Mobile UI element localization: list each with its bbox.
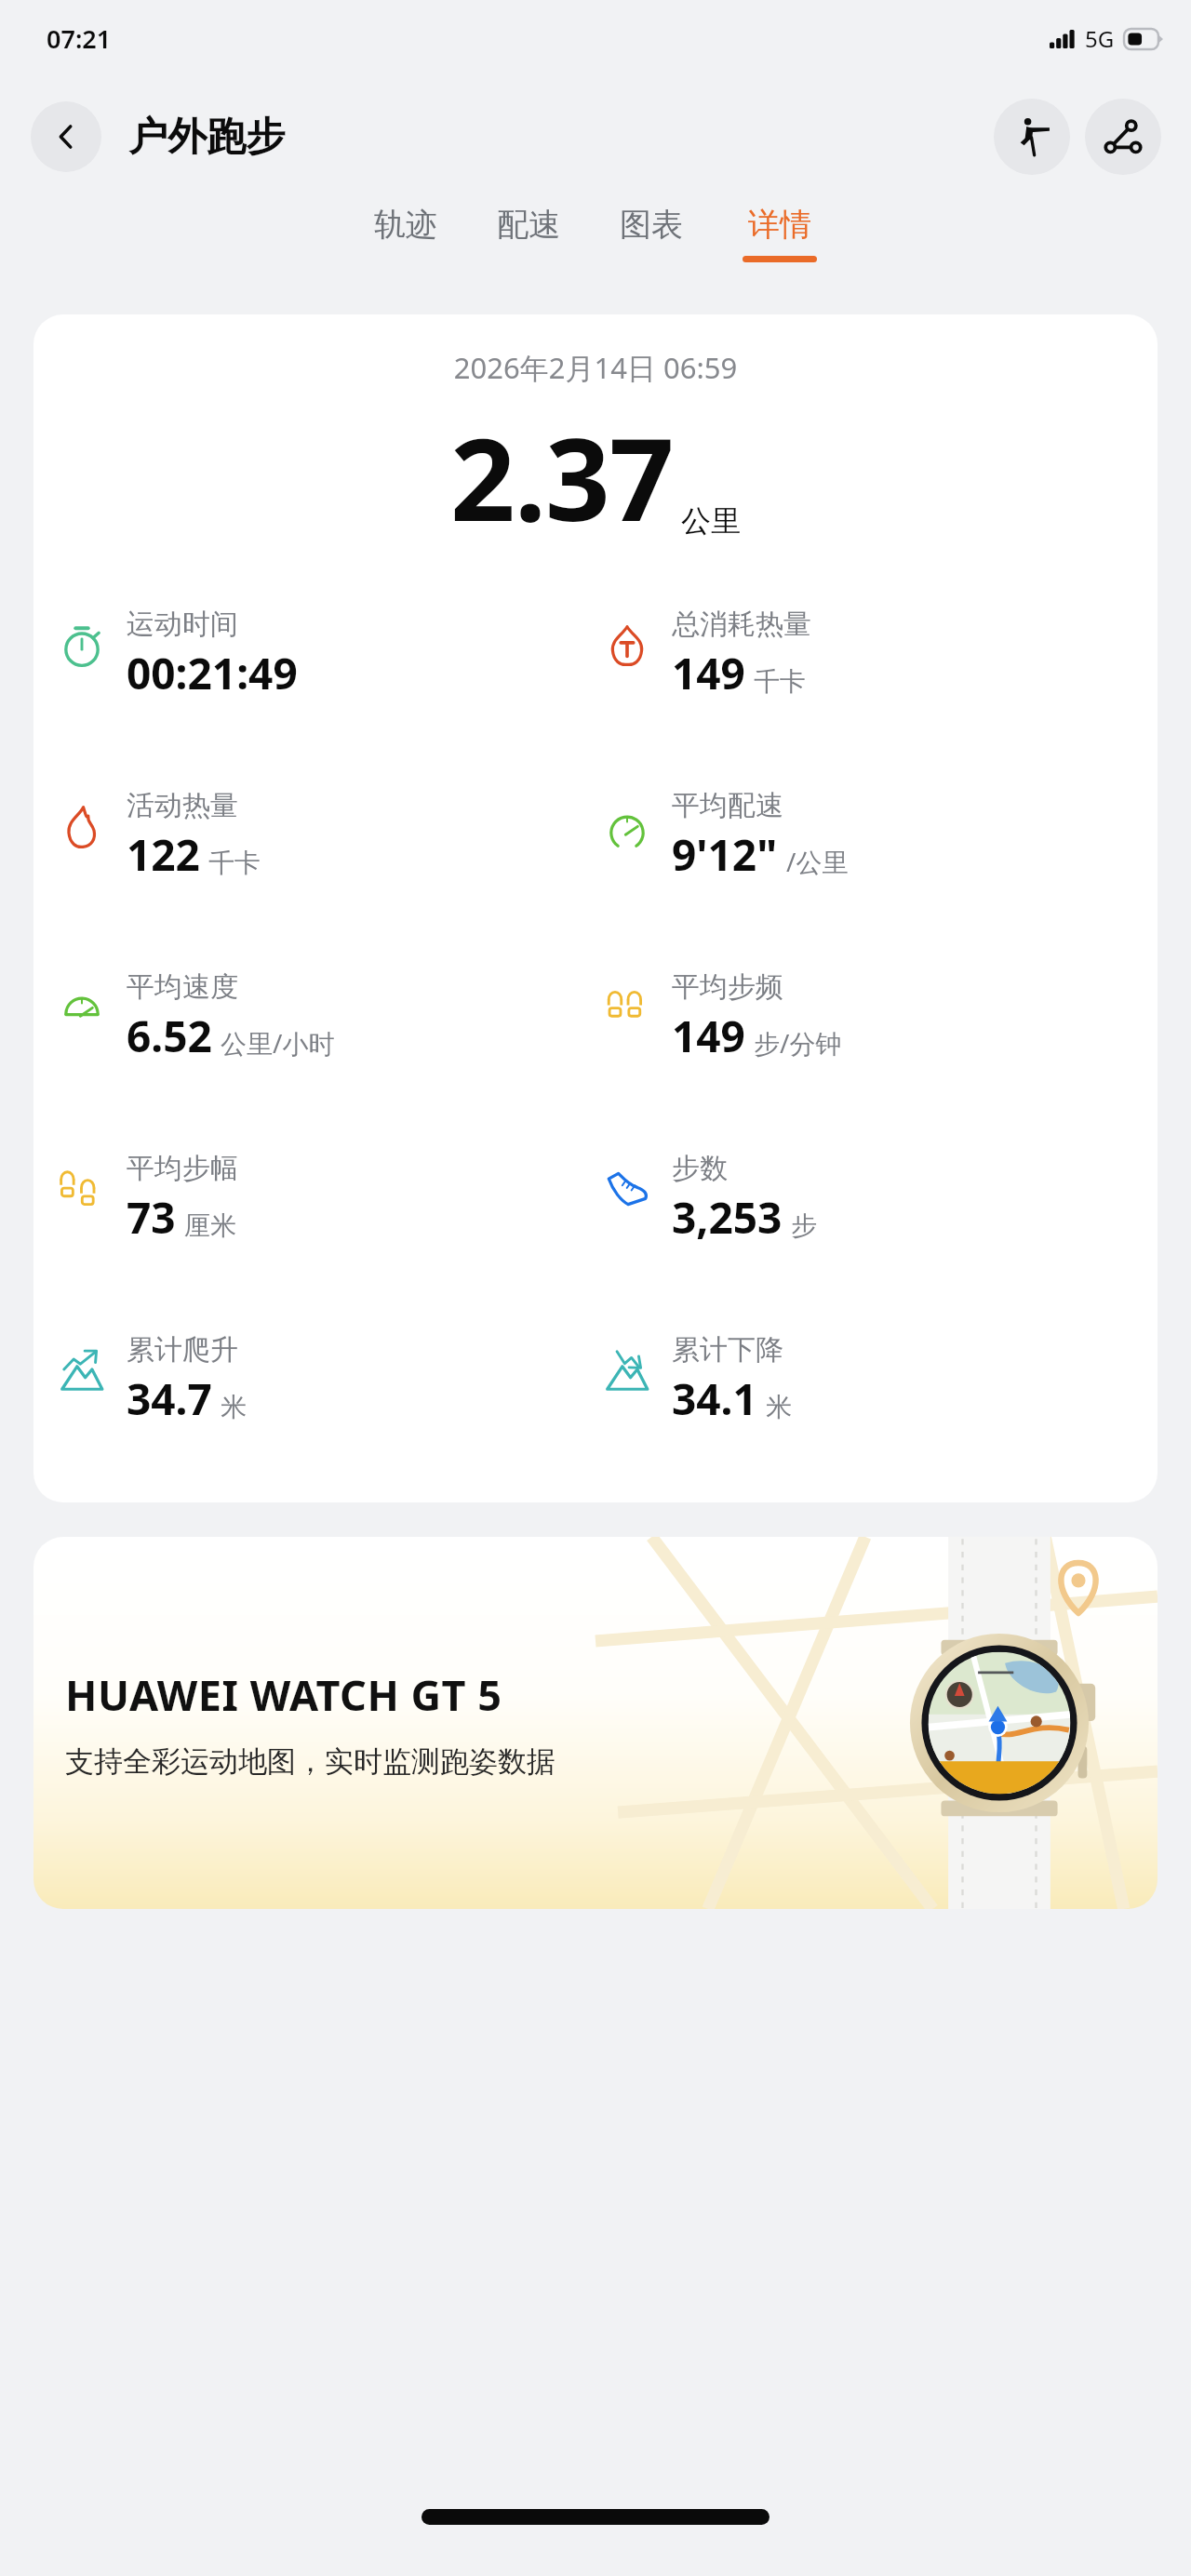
button[interactable]: 2026年2月14日 06:59 bbox=[33, 314, 1158, 1502]
staticText: 5G bbox=[1085, 23, 1115, 54]
staticText: 米 bbox=[766, 1391, 792, 1423]
staticText: 米 bbox=[221, 1391, 247, 1423]
button[interactable]: 图表 bbox=[612, 197, 690, 263]
button[interactable]: 轨迹 bbox=[367, 197, 445, 263]
button[interactable]: 总消耗热量 bbox=[603, 607, 1158, 702]
staticText: 34.1 bbox=[672, 1369, 757, 1428]
staticText: 图表 bbox=[620, 205, 683, 245]
button[interactable]: 运动时间 bbox=[58, 607, 595, 702]
staticText: 34.7 bbox=[127, 1369, 212, 1428]
button[interactable]: 步数 bbox=[603, 1151, 1158, 1247]
staticText: 73 bbox=[127, 1188, 176, 1247]
staticText: 07:21 bbox=[47, 21, 112, 56]
staticText: 平均步幅 bbox=[127, 1151, 238, 1186]
button[interactable]: Back bbox=[31, 101, 101, 172]
button[interactable]: 平均配速 bbox=[603, 788, 1158, 884]
staticText: 步 bbox=[791, 1209, 817, 1242]
staticText: 轨迹 bbox=[374, 205, 437, 245]
staticText: 6.52 bbox=[127, 1007, 212, 1065]
staticText: 2.37 bbox=[450, 400, 674, 554]
staticText: 运动时间 bbox=[127, 607, 238, 642]
button[interactable]: Share bbox=[1085, 99, 1161, 175]
button[interactable]: 平均步幅 bbox=[58, 1151, 595, 1247]
staticText: 00:21:49 bbox=[127, 644, 298, 702]
staticText: 平均配速 bbox=[672, 788, 783, 823]
button[interactable]: 详情 bbox=[735, 197, 824, 270]
staticText: /公里 bbox=[786, 844, 849, 879]
button[interactable]: 活动热量 bbox=[58, 788, 595, 884]
staticText: 公里 bbox=[681, 502, 741, 540]
button[interactable]: 配速 bbox=[489, 197, 568, 263]
staticText: 配速 bbox=[497, 205, 560, 245]
staticText: 3,253 bbox=[672, 1188, 783, 1247]
staticText: 平均步频 bbox=[672, 969, 783, 1005]
staticText: 千卡 bbox=[208, 847, 261, 879]
button[interactable]: 累计爬升 bbox=[58, 1332, 595, 1428]
staticText: 步/分钟 bbox=[754, 1025, 842, 1061]
staticText: 活动热量 bbox=[127, 788, 238, 823]
staticText: 149 bbox=[672, 644, 745, 702]
staticText: 累计爬升 bbox=[127, 1332, 238, 1368]
staticText: 厘米 bbox=[184, 1209, 236, 1242]
staticText: 149 bbox=[672, 1007, 745, 1065]
staticText: 公里/小时 bbox=[221, 1025, 335, 1061]
button[interactable]: HUAWEI WATCH GT 5 bbox=[33, 1537, 1158, 1909]
button[interactable]: Running pose bbox=[994, 99, 1070, 175]
button[interactable]: 累计下降 bbox=[603, 1332, 1158, 1428]
staticText: 9'12" bbox=[672, 825, 778, 884]
staticText: 步数 bbox=[672, 1151, 728, 1186]
staticText: HUAWEI WATCH GT 5 bbox=[65, 1666, 502, 1723]
staticText: 122 bbox=[127, 825, 200, 884]
staticText: 详情 bbox=[748, 205, 811, 245]
button[interactable]: 平均速度 bbox=[58, 969, 595, 1065]
staticText: 户外跑步 bbox=[128, 113, 285, 162]
staticText: 千卡 bbox=[754, 665, 806, 698]
staticText: 总消耗热量 bbox=[672, 607, 811, 642]
button[interactable]: 平均步频 bbox=[603, 969, 1158, 1065]
staticText: 支持全彩运动地图，实时监测跑姿数据 bbox=[65, 1743, 555, 1780]
staticText: 2026年2月14日 06:59 bbox=[33, 348, 1158, 387]
staticText: 累计下降 bbox=[672, 1332, 783, 1368]
staticText: 平均速度 bbox=[127, 969, 238, 1005]
